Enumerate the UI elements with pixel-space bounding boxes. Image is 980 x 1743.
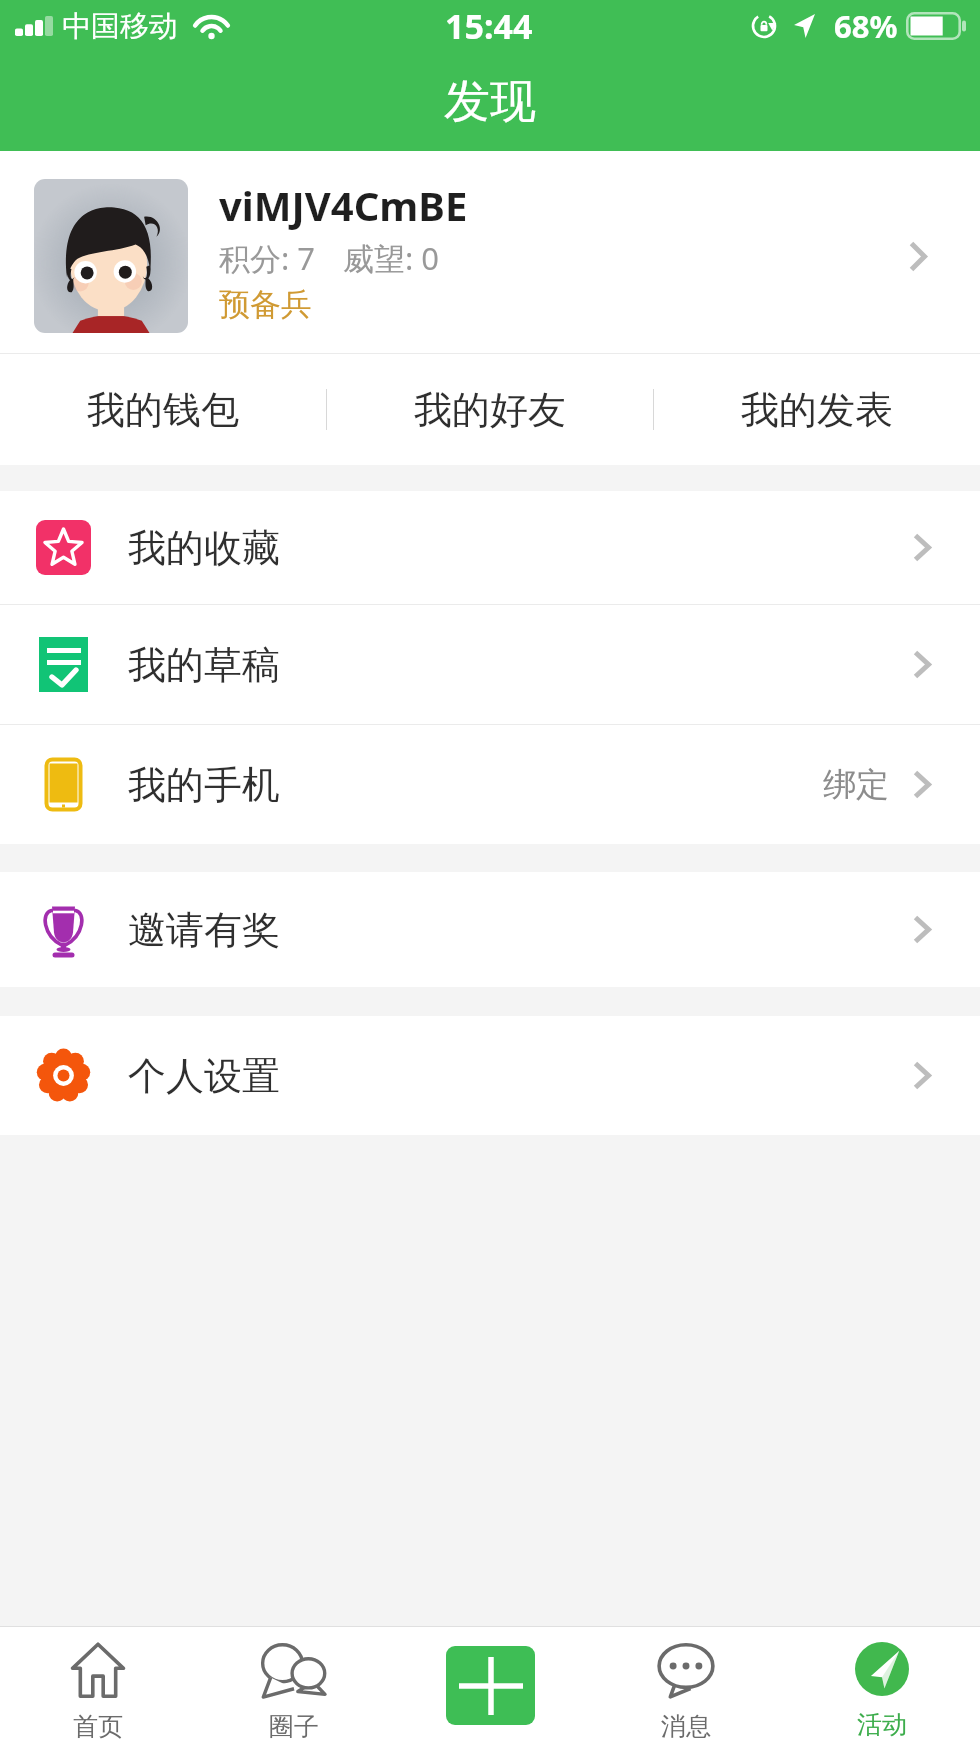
staticText: 我的收藏 [128,524,280,572]
staticText: 中国移动 [62,8,178,45]
button[interactable]: 圈子 [196,1627,392,1743]
staticText: 消息 [661,1711,711,1742]
button[interactable]: 首页 [0,1627,196,1743]
staticText: 68% [834,5,898,47]
staticText: 圈子 [269,1711,319,1742]
button[interactable]: 邀请有奖 [0,872,980,987]
staticText: 绑定 [823,764,889,806]
staticText: 个人设置 [128,1052,280,1100]
staticText: 威望: 0 [343,237,440,279]
button[interactable]: viMJV4CmBE [0,151,980,353]
button[interactable]: 我的草稿 [0,605,980,724]
staticText: 我的钱包 [87,386,239,434]
staticText: 15:44 [445,3,533,49]
button[interactable]: 消息 [588,1627,784,1743]
staticText: 活动 [857,1709,907,1740]
button[interactable]: 我的收藏 [0,491,980,604]
staticText: 预备兵 [219,285,312,324]
button[interactable]: 个人设置 [0,1016,980,1135]
staticText: 首页 [73,1711,123,1742]
staticText: 邀请有奖 [128,906,280,954]
button[interactable]: 活动 [784,1627,980,1743]
staticText: 我的草稿 [128,641,280,689]
staticText: 我的发表 [741,386,893,434]
staticText: 我的好友 [414,386,566,434]
button[interactable]: New post [392,1627,588,1743]
button[interactable]: 我的钱包 [0,354,326,465]
button[interactable]: 我的手机 [0,725,980,844]
staticText: 积分: 7 [219,237,316,279]
staticText: viMJV4CmBE [219,178,468,232]
button[interactable]: 我的发表 [654,354,980,465]
button[interactable]: 我的好友 [327,354,653,465]
staticText: 发现 [444,73,536,131]
staticText: 我的手机 [128,761,280,809]
